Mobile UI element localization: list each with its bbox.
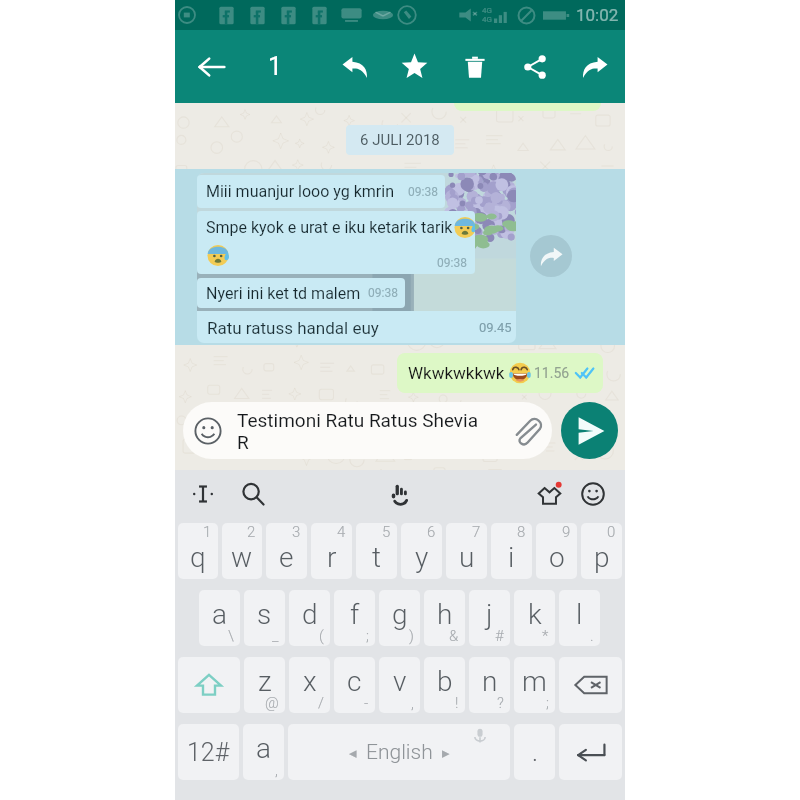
button[interactable]: Shift	[178, 657, 240, 713]
button[interactable]: ;	[514, 657, 555, 713]
staticText: c	[347, 665, 362, 698]
button[interactable]: (	[289, 590, 330, 646]
staticText: n	[482, 665, 498, 698]
staticText: g	[392, 598, 408, 631]
staticText: Wkwkwkkwk	[408, 363, 505, 383]
staticText: u	[459, 541, 475, 574]
button[interactable]: ,	[379, 657, 420, 713]
staticText: t	[372, 541, 382, 574]
button[interactable]: 12#	[178, 724, 239, 780]
button[interactable]: 8	[491, 523, 532, 579]
button[interactable]: ◂	[288, 724, 510, 780]
button[interactable]: -	[334, 657, 375, 713]
staticText: x	[303, 665, 317, 698]
staticText: Smpe kyok e urat e iku ketarik tarik	[206, 218, 453, 237]
button[interactable]: *	[514, 590, 555, 646]
staticText: 1	[268, 52, 283, 81]
button[interactable]: Nyeri ini ket td malem	[197, 278, 405, 308]
button[interactable]: Text editing	[185, 476, 221, 512]
button[interactable]: ,	[243, 724, 284, 780]
staticText: @	[265, 694, 279, 712]
staticText: 7	[472, 523, 481, 541]
button[interactable]: 7	[446, 523, 487, 579]
staticText: r	[327, 541, 337, 574]
button[interactable]: Star	[392, 30, 436, 103]
button[interactable]: ?	[469, 657, 510, 713]
staticText: a	[256, 732, 272, 765]
button[interactable]: 3	[266, 523, 307, 579]
button[interactable]: 4	[311, 523, 352, 579]
staticText: q	[190, 541, 206, 574]
staticText: English	[366, 740, 433, 765]
staticText: (	[319, 627, 324, 645]
staticText: y	[415, 541, 429, 574]
staticText: w	[231, 541, 253, 574]
button[interactable]: Testimoni Ratu Ratus Shevia	[183, 402, 552, 459]
staticText: k	[528, 598, 542, 631]
staticText: *	[542, 627, 549, 645]
staticText: \	[228, 627, 234, 645]
button[interactable]: Forward message	[530, 235, 572, 277]
staticText: b	[437, 665, 453, 698]
staticText: .	[590, 627, 594, 645]
staticText: ;	[546, 694, 549, 712]
staticText: 8	[517, 523, 526, 541]
button[interactable]: \	[199, 590, 240, 646]
button[interactable]: Forward message	[175, 169, 625, 345]
staticText: ?	[497, 694, 504, 712]
staticText: /	[318, 694, 324, 712]
button[interactable]: Theme	[529, 474, 569, 514]
button[interactable]: Share	[513, 30, 557, 103]
staticText: 09:38	[368, 286, 398, 300]
button[interactable]: Enter	[559, 724, 622, 780]
staticText: 10:02	[576, 5, 619, 25]
staticText: o	[549, 541, 565, 574]
staticText: 1	[203, 523, 212, 541]
button[interactable]: 9	[536, 523, 577, 579]
button[interactable]: Wkwkwkkwk	[397, 353, 603, 393]
button[interactable]: 1	[257, 30, 293, 103]
button[interactable]: 6	[401, 523, 442, 579]
staticText: 0	[607, 523, 616, 541]
staticText: #	[495, 627, 504, 645]
staticText: i	[508, 541, 515, 574]
button[interactable]: .	[559, 590, 600, 646]
button[interactable]: Search	[235, 476, 271, 512]
button[interactable]: .	[514, 724, 555, 780]
button[interactable]: Emoji	[575, 476, 611, 512]
button[interactable]: _	[244, 590, 285, 646]
staticText: 4G	[482, 6, 492, 15]
button[interactable]: Miii muanjur looo yg kmrin	[197, 175, 445, 208]
staticText: f	[350, 598, 360, 631]
button[interactable]: Send	[561, 402, 618, 459]
button[interactable]: ;	[334, 590, 375, 646]
button[interactable]: Backspace	[559, 657, 622, 713]
button[interactable]: !	[424, 657, 465, 713]
button[interactable]: #	[469, 590, 510, 646]
staticText: v	[393, 665, 407, 698]
button[interactable]: Smpe kyok e urat e iku ketarik tarik	[197, 211, 475, 274]
staticText: p	[594, 541, 610, 574]
button[interactable]: Handwriting	[382, 476, 418, 512]
staticText: ,	[411, 694, 414, 712]
staticText: 11.56	[534, 365, 570, 381]
staticText: h	[437, 598, 453, 631]
button[interactable]: 1	[178, 523, 218, 579]
staticText: a	[212, 598, 228, 631]
button[interactable]: Delete	[453, 30, 497, 103]
staticText: .	[532, 738, 538, 767]
button[interactable]: 6 JULI 2018	[346, 125, 454, 155]
staticText: 6 JULI 2018	[360, 131, 440, 149]
staticText: ▸	[442, 744, 450, 761]
button[interactable]: @	[244, 657, 285, 713]
button[interactable]: Forward	[573, 30, 617, 103]
button[interactable]: Reply	[333, 30, 377, 103]
button[interactable]: 5	[356, 523, 397, 579]
button[interactable]: &	[424, 590, 465, 646]
staticText: ,	[275, 761, 278, 779]
button[interactable]: Back	[194, 30, 230, 103]
button[interactable]: )	[379, 590, 420, 646]
button[interactable]: /	[289, 657, 330, 713]
button[interactable]: 2	[222, 523, 262, 579]
button[interactable]: 0	[581, 523, 622, 579]
